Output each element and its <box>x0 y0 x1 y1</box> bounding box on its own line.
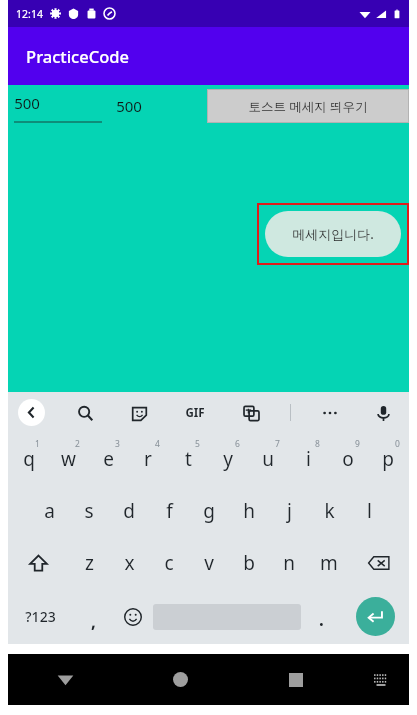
button[interactable]: n <box>269 537 309 589</box>
button[interactable]: u <box>248 433 288 485</box>
button[interactable]: 500 <box>14 85 104 127</box>
button[interactable]: Backspace <box>349 537 409 589</box>
staticText: l <box>367 498 372 524</box>
staticText: 토스트 메세지 띄우기 <box>248 98 368 115</box>
button[interactable]: 메세지입니다. <box>257 203 409 265</box>
button[interactable]: d <box>109 485 149 537</box>
button[interactable]: t <box>168 433 208 485</box>
button[interactable]: Stickers <box>125 399 153 427</box>
button[interactable]: e <box>88 433 128 485</box>
staticText: 500 <box>14 93 40 113</box>
staticText: v <box>204 550 214 576</box>
button[interactable]: Back <box>8 654 123 705</box>
staticText: 1 <box>35 438 40 450</box>
staticText: a <box>44 498 55 524</box>
button[interactable]: g <box>189 485 229 537</box>
staticText: p <box>382 446 394 472</box>
staticText: b <box>243 550 255 576</box>
button[interactable]: y <box>208 433 248 485</box>
button[interactable]: Voice input <box>369 399 397 427</box>
button[interactable]: Home <box>123 654 238 705</box>
staticText: j <box>287 498 292 524</box>
button[interactable]: x <box>109 537 149 589</box>
staticText: g <box>203 498 215 524</box>
staticText: w <box>61 446 76 472</box>
button[interactable]: k <box>309 485 349 537</box>
button[interactable]: w <box>48 433 88 485</box>
button[interactable]: a <box>29 485 69 537</box>
staticText: r <box>144 446 152 472</box>
button[interactable]: Back <box>18 399 45 426</box>
button[interactable]: s <box>69 485 109 537</box>
staticText: 메세지입니다. <box>292 225 374 243</box>
button[interactable]: , <box>73 589 113 644</box>
staticText: x <box>124 550 135 576</box>
staticText: n <box>283 550 295 576</box>
button[interactable]: v <box>189 537 229 589</box>
staticText: 5 <box>195 438 200 450</box>
staticText: . <box>319 608 324 631</box>
staticText: o <box>342 446 354 472</box>
button[interactable]: Emoji <box>113 589 153 644</box>
button[interactable]: Recents <box>238 654 353 705</box>
staticText: 0 <box>395 438 400 450</box>
button[interactable]: Switch keyboard <box>353 654 409 705</box>
button[interactable]: GIF <box>178 396 212 430</box>
staticText: , <box>91 610 96 633</box>
button[interactable]: p <box>368 433 408 485</box>
button[interactable]: z <box>69 537 109 589</box>
staticText: d <box>123 498 135 524</box>
staticText: PracticeCode <box>26 45 129 67</box>
staticText: 2 <box>75 438 80 450</box>
button[interactable]: 토스트 메세지 띄우기 <box>207 89 409 123</box>
button[interactable]: More options <box>316 399 344 427</box>
button[interactable]: o <box>328 433 368 485</box>
button[interactable]: i <box>288 433 328 485</box>
staticText: 3 <box>115 438 120 450</box>
button[interactable]: . <box>301 589 341 644</box>
staticText: q <box>23 446 35 472</box>
button[interactable]: f <box>149 485 189 537</box>
button[interactable]: b <box>229 537 269 589</box>
staticText: s <box>84 498 94 524</box>
button[interactable]: Search <box>71 399 99 427</box>
button[interactable]: l <box>349 485 389 537</box>
button[interactable]: Translate <box>237 399 265 427</box>
staticText: k <box>324 498 335 524</box>
staticText: ?123 <box>25 607 56 626</box>
staticText: y <box>223 446 233 472</box>
staticText: i <box>306 446 311 472</box>
button[interactable]: ?123 <box>8 589 73 644</box>
button[interactable]: m <box>309 537 349 589</box>
staticText: u <box>262 446 274 472</box>
staticText: 500 <box>116 96 142 116</box>
button[interactable]: r <box>128 433 168 485</box>
staticText: h <box>243 498 255 524</box>
staticText: 12:14 <box>16 7 43 21</box>
button[interactable]: j <box>269 485 309 537</box>
staticText: t <box>185 446 192 472</box>
staticText: m <box>320 550 338 576</box>
button[interactable]: h <box>229 485 269 537</box>
button[interactable]: Enter <box>341 589 409 644</box>
staticText: 8 <box>315 438 320 450</box>
staticText: GIF <box>185 405 205 421</box>
staticText: 4 <box>155 438 160 450</box>
staticText: e <box>103 446 114 472</box>
staticText: c <box>164 550 174 576</box>
staticText: f <box>166 498 173 524</box>
button[interactable]: c <box>149 537 189 589</box>
staticText: z <box>85 550 94 576</box>
staticText: 7 <box>275 438 280 450</box>
staticText: 9 <box>355 438 360 450</box>
button[interactable]: Space <box>153 589 301 644</box>
button[interactable]: q <box>9 433 48 485</box>
button[interactable]: Shift <box>8 537 69 589</box>
staticText: 6 <box>235 438 240 450</box>
